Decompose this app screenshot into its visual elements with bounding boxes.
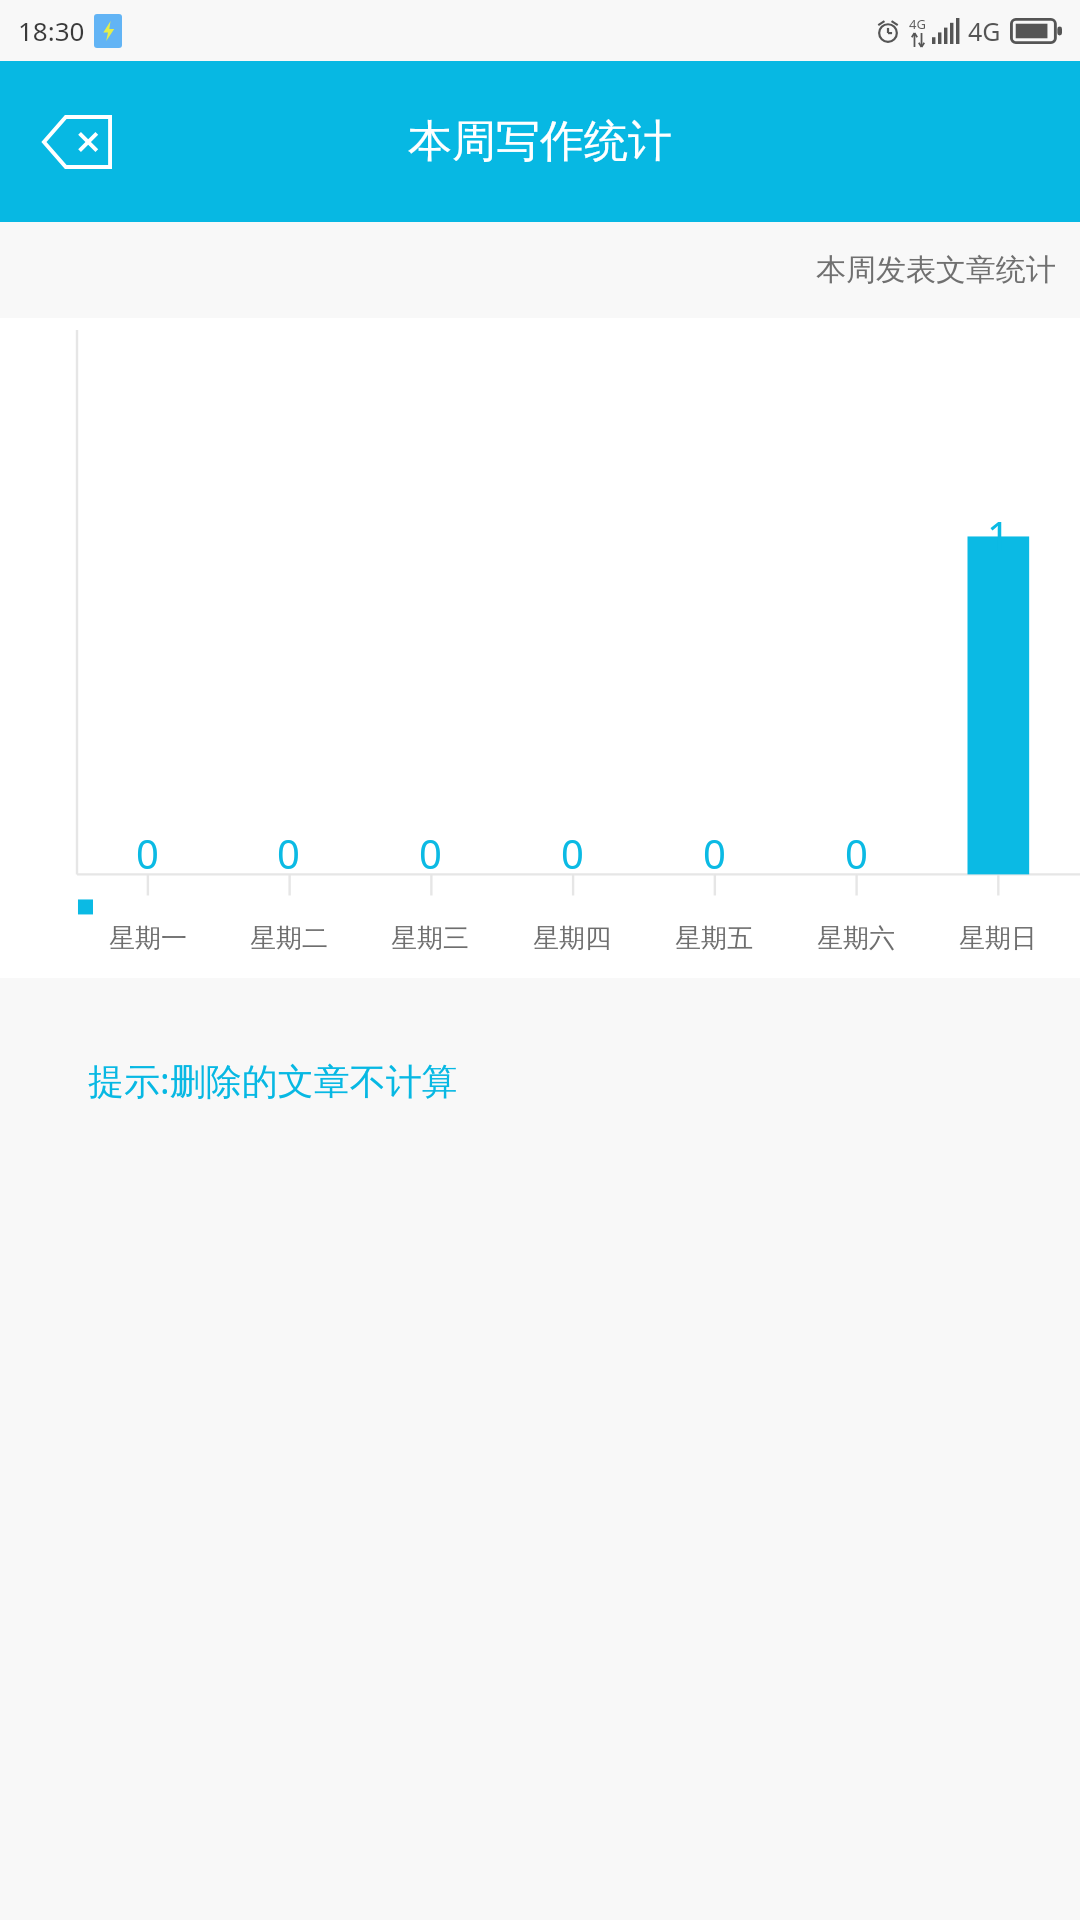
- staticText: 本周写作统计: [408, 114, 672, 169]
- staticText: 0: [419, 826, 442, 880]
- staticText: 0: [277, 826, 300, 880]
- staticText: 18:30: [18, 13, 85, 48]
- staticText: 0: [845, 826, 868, 880]
- staticText: 0: [561, 826, 584, 880]
- staticText: 星期六: [817, 922, 895, 955]
- staticText: 4G: [909, 15, 926, 33]
- staticText: 0: [703, 826, 726, 880]
- staticText: 星期五: [675, 922, 753, 955]
- staticText: 1: [987, 508, 1010, 562]
- staticText: 星期日: [959, 922, 1037, 955]
- staticText: 星期四: [533, 922, 611, 955]
- button[interactable]: Back: [34, 99, 120, 185]
- staticText: 星期一: [109, 922, 187, 955]
- staticText: 本周发表文章统计: [816, 251, 1056, 289]
- staticText: 4G: [968, 14, 1001, 48]
- staticText: 0: [136, 826, 159, 880]
- staticText: 星期二: [250, 922, 328, 955]
- staticText: 提示:删除的文章不计算: [88, 1056, 458, 1105]
- staticText: 星期三: [391, 922, 469, 955]
